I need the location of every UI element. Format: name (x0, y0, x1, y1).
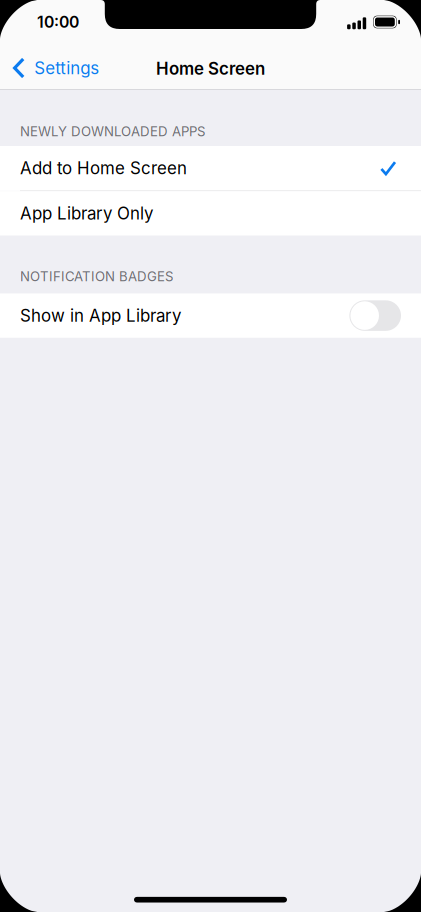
staticText: Add to Home Screen (20, 158, 187, 178)
staticText: Show in App Library (20, 305, 181, 326)
staticText: NOTIFICATION BADGES (20, 268, 173, 284)
staticText: 10:00 (37, 12, 79, 31)
staticText: App Library Only (20, 203, 153, 223)
button[interactable]: Show in App Library (349, 300, 401, 331)
button[interactable]: Settings (0, 44, 109, 88)
button[interactable]: App Library Only (0, 191, 421, 235)
staticText: NEWLY DOWNLOADED APPS (20, 123, 205, 139)
button[interactable]: Add to Home Screen (0, 146, 421, 190)
staticText: Settings (34, 58, 99, 78)
staticText: Home Screen (156, 58, 265, 79)
